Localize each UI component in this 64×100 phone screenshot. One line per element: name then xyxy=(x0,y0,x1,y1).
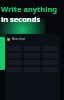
staticText: Write anything xyxy=(1,4,58,14)
staticText: New chat xyxy=(12,37,26,41)
staticText: in seconds xyxy=(1,14,41,24)
